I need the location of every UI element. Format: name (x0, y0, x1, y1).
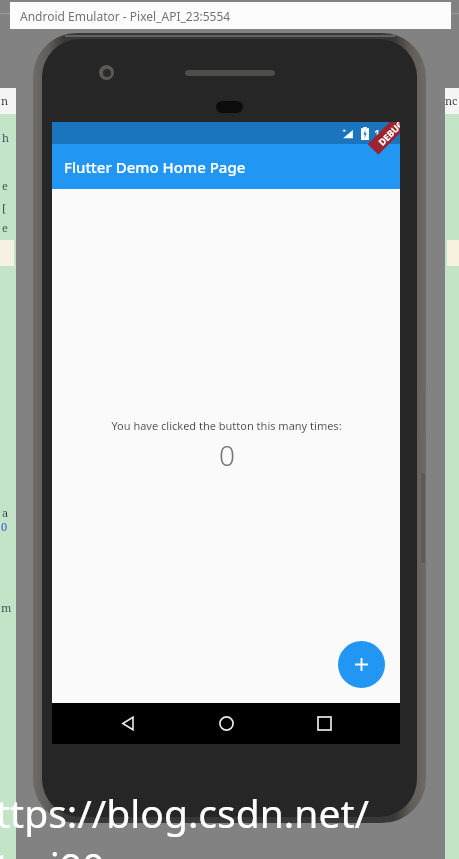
staticText: a (2, 505, 9, 520)
staticText: [ (2, 200, 6, 215)
staticText: e (2, 178, 8, 193)
staticText: Android Emulator - Pixel_API_23:5554 (20, 8, 231, 24)
staticText: n (1, 93, 9, 108)
staticText: h (2, 130, 9, 145)
staticText: 1:51 (374, 126, 396, 141)
staticText: DEBUG (375, 122, 400, 148)
staticText: You have clicked the button this many ti… (111, 418, 342, 433)
staticText: nc (445, 93, 458, 108)
staticText: e (2, 220, 8, 235)
staticText: Flutter Demo Home Page (64, 157, 246, 177)
button[interactable]: Recent apps (302, 703, 346, 744)
button[interactable]: Android Emulator - Pixel_API_23:5554 (10, 2, 451, 29)
staticText: 0 (1, 519, 8, 534)
button[interactable]: Back (106, 703, 150, 744)
staticText: m (1, 600, 12, 615)
button[interactable]: Increment (338, 641, 385, 688)
button[interactable]: Home (204, 703, 248, 744)
staticText: ttps://blog.csdn.net/tyyj90 (0, 786, 455, 859)
staticText: 0 (219, 436, 235, 474)
